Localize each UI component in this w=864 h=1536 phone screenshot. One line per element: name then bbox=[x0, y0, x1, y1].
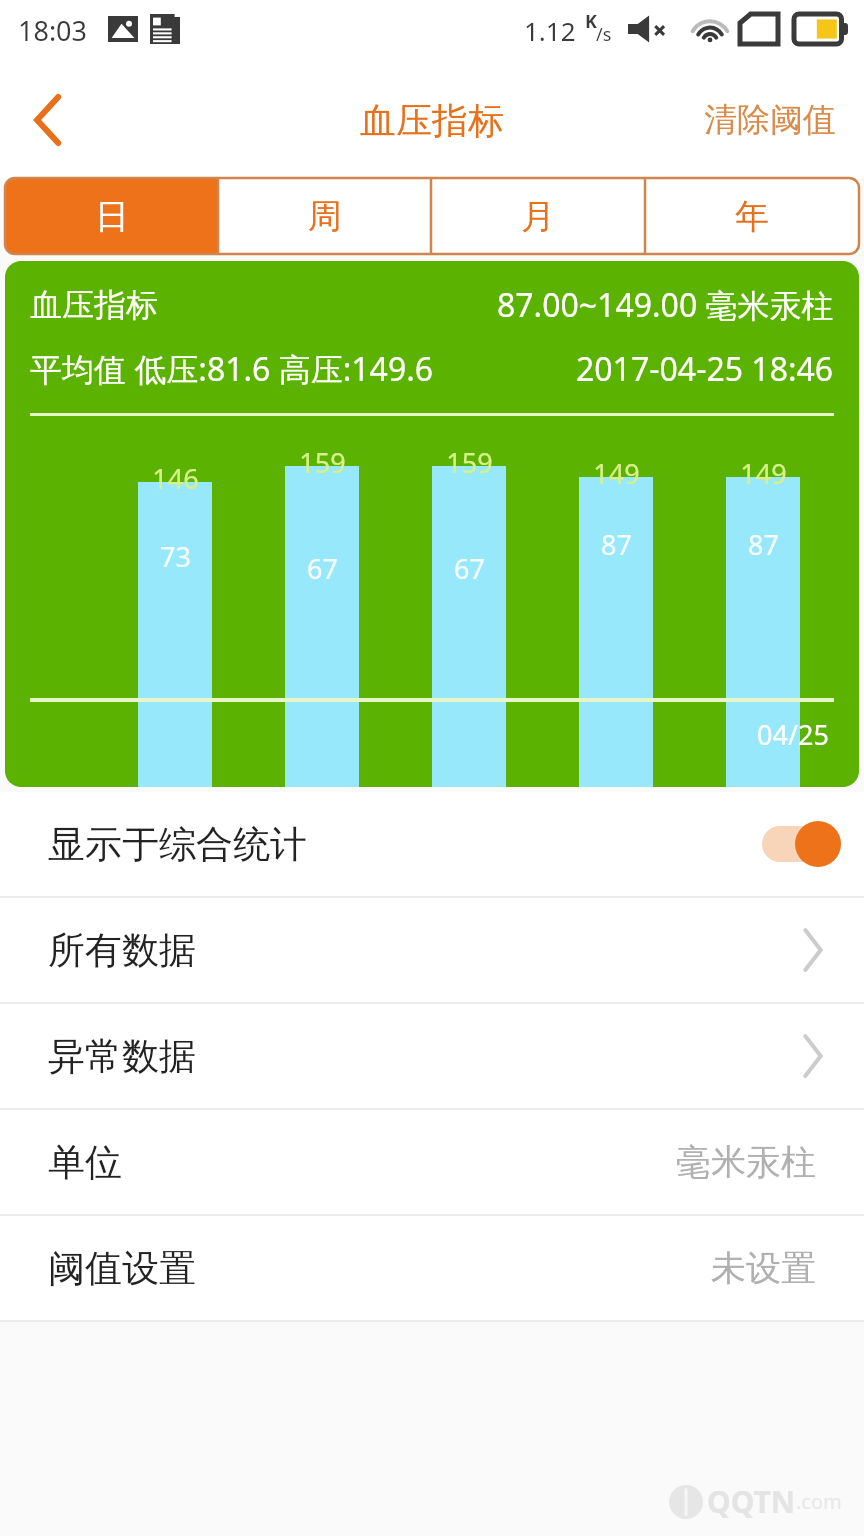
staticText: 87.00~149.00 毫米汞柱 bbox=[497, 283, 834, 327]
button[interactable]: Toggle display in statistics bbox=[758, 821, 844, 867]
staticText: 平均值 低压:81.6 高压:149.6 bbox=[30, 347, 434, 391]
button[interactable]: 异常数据 bbox=[0, 1004, 864, 1108]
staticText: 月 bbox=[521, 195, 555, 238]
staticText: QQTN bbox=[707, 1481, 796, 1522]
staticText: 159 bbox=[446, 444, 493, 481]
staticText: 异常数据 bbox=[48, 1033, 196, 1080]
button[interactable]: 月 bbox=[431, 178, 645, 254]
staticText: 159 bbox=[299, 444, 346, 481]
staticText: 阈值设置 bbox=[48, 1245, 196, 1292]
button[interactable]: 清除阈值 bbox=[698, 85, 842, 155]
staticText: 149 bbox=[593, 455, 640, 492]
button[interactable]: 日 bbox=[5, 178, 218, 254]
button[interactable]: 所有数据 bbox=[0, 898, 864, 1002]
staticText: 73 bbox=[160, 538, 191, 575]
staticText: 年 bbox=[735, 195, 769, 238]
staticText: 未设置 bbox=[711, 1246, 816, 1290]
staticText: 146 bbox=[152, 460, 199, 497]
staticText: 显示于综合统计 bbox=[48, 821, 307, 868]
staticText: 血压指标 bbox=[30, 285, 158, 325]
staticText: 所有数据 bbox=[48, 927, 196, 974]
staticText: 1.12 bbox=[524, 13, 576, 48]
staticText: 67 bbox=[454, 550, 485, 587]
staticText: 149 bbox=[740, 455, 787, 492]
staticText: 04/25 bbox=[757, 716, 829, 753]
staticText: 87 bbox=[748, 526, 779, 563]
staticText: 日 bbox=[95, 195, 129, 238]
staticText: .com bbox=[796, 1488, 842, 1515]
staticText: 血压指标 bbox=[360, 98, 504, 143]
staticText: 毫米汞柱 bbox=[676, 1140, 816, 1184]
button[interactable]: 显示于综合统计 bbox=[0, 792, 864, 896]
staticText: 周 bbox=[308, 195, 342, 238]
staticText: 87 bbox=[601, 526, 632, 563]
button[interactable]: 阈值设置 bbox=[0, 1216, 864, 1320]
staticText: 清除阈值 bbox=[704, 99, 836, 141]
staticText: 2017-04-25 18:46 bbox=[576, 347, 834, 391]
button[interactable]: 年 bbox=[645, 178, 859, 254]
staticText: 18:03 bbox=[18, 12, 88, 49]
button[interactable]: 周 bbox=[218, 178, 431, 254]
button[interactable]: 单位 bbox=[0, 1110, 864, 1214]
staticText: 67 bbox=[307, 550, 338, 587]
staticText: 单位 bbox=[48, 1139, 122, 1186]
button[interactable]: Back bbox=[0, 72, 96, 168]
staticText: /s bbox=[596, 22, 612, 47]
staticText: K bbox=[585, 9, 597, 34]
